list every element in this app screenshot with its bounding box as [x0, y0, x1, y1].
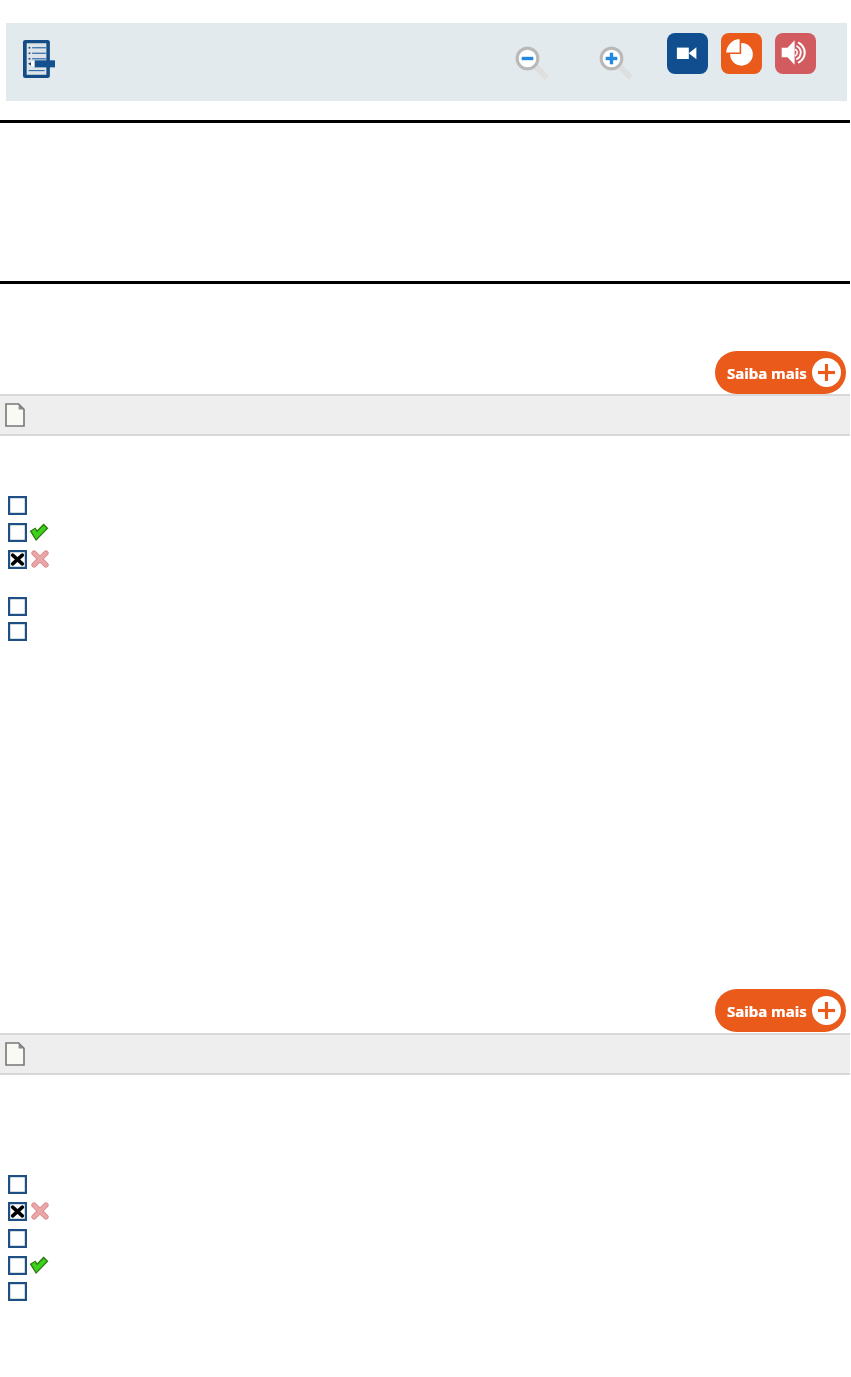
button[interactable]: Sound — [775, 33, 816, 74]
button[interactable]: Option — [8, 1175, 27, 1194]
staticText: Saiba mais — [727, 363, 807, 383]
button[interactable]: Option — [8, 1282, 27, 1301]
staticText: Saiba mais — [727, 1001, 807, 1021]
button[interactable]: Option — [8, 1202, 27, 1221]
button[interactable]: Option — [8, 523, 27, 542]
button[interactable]: Saiba mais — [715, 989, 846, 1032]
button[interactable]: Option — [8, 1256, 27, 1275]
button[interactable]: Quiz — [23, 40, 55, 78]
button[interactable]: Option — [8, 597, 27, 616]
button[interactable]: Statistics — [721, 33, 762, 74]
button[interactable]: Saiba mais — [715, 351, 846, 394]
button[interactable]: Video — [667, 33, 708, 74]
button[interactable]: Option — [8, 1229, 27, 1248]
button[interactable]: Option — [8, 622, 27, 641]
button[interactable]: Option — [8, 496, 27, 515]
button[interactable]: Option — [8, 550, 27, 569]
button[interactable]: Zoom out — [515, 46, 549, 80]
button[interactable]: Zoom in — [599, 46, 633, 80]
